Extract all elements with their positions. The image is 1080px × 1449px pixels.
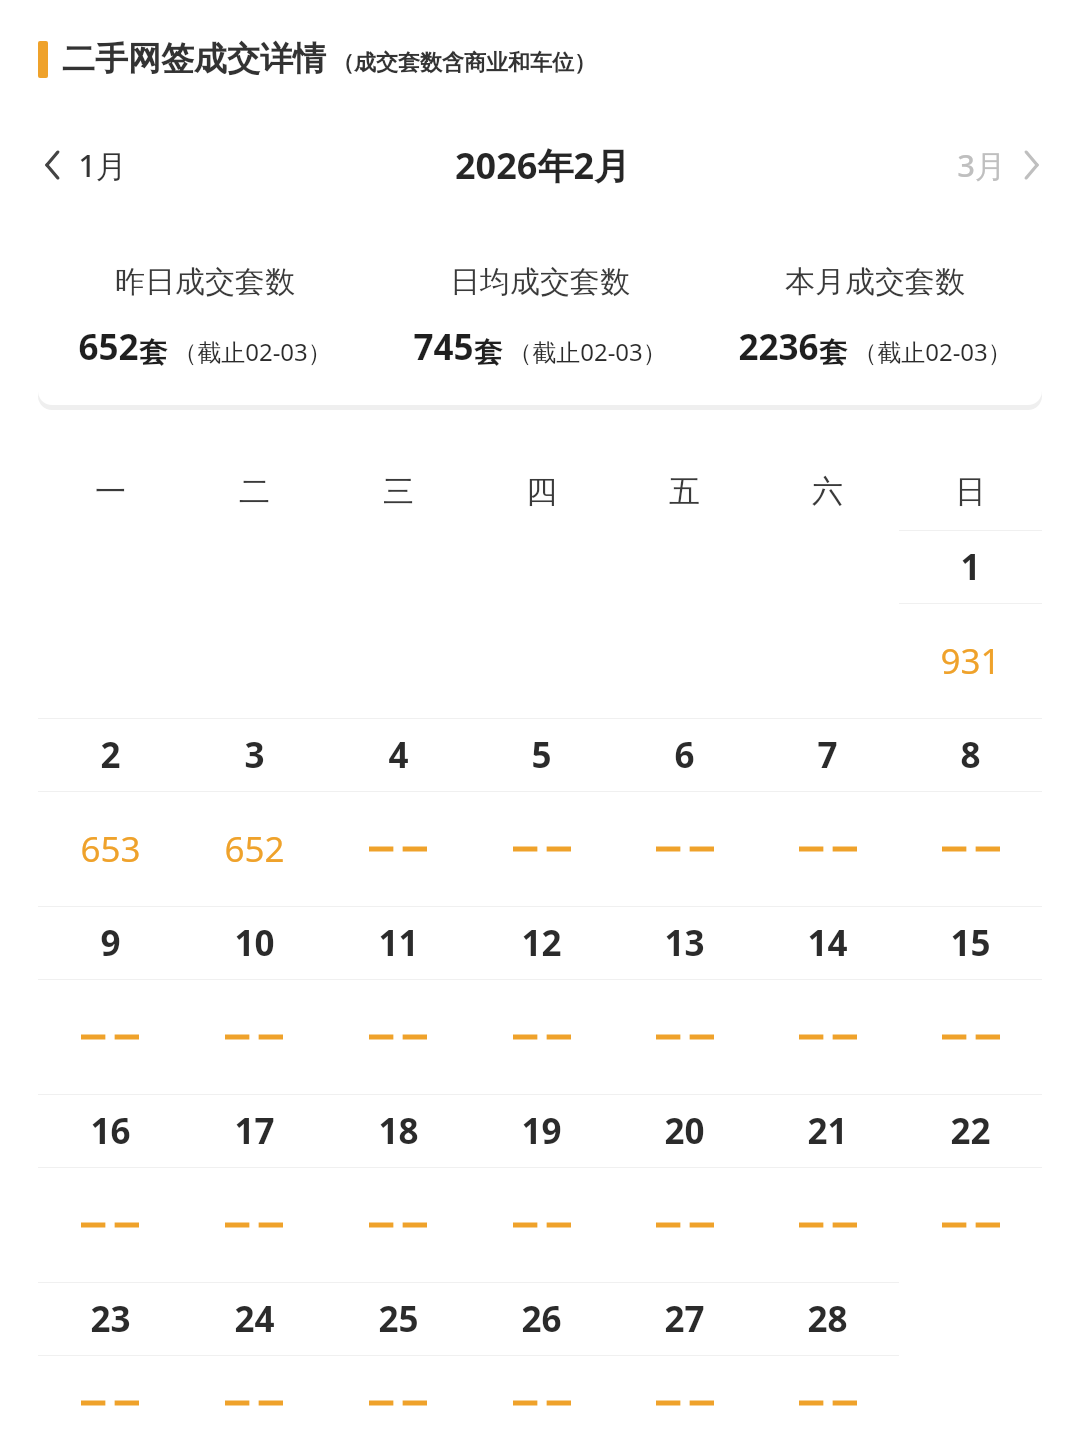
button[interactable]: 12 xyxy=(470,907,613,979)
button[interactable]: 26 xyxy=(470,1283,613,1355)
button[interactable]: 18 xyxy=(326,1095,470,1167)
button[interactable]: 3 xyxy=(182,719,326,791)
staticText: 6 xyxy=(674,731,695,779)
staticText: 10 xyxy=(234,919,275,967)
staticText: 26 xyxy=(521,1295,562,1343)
staticText: （截止02-03） xyxy=(853,335,1012,368)
staticText: 六 xyxy=(812,472,843,511)
staticText: 28 xyxy=(807,1295,848,1343)
button[interactable]: 23 xyxy=(38,1283,182,1355)
button[interactable]: 22 xyxy=(899,1095,1042,1167)
staticText: 3 xyxy=(244,731,265,779)
staticText: 27 xyxy=(664,1295,705,1343)
staticText: 23 xyxy=(90,1295,131,1343)
button[interactable]: 9 xyxy=(38,907,182,979)
staticText: 11 xyxy=(378,919,419,967)
staticText: 五 xyxy=(669,472,700,511)
staticText: 652 xyxy=(224,825,285,873)
button[interactable]: 昨日成交套数 xyxy=(38,229,1042,405)
staticText: 13 xyxy=(664,919,705,967)
button[interactable]: 2 xyxy=(38,719,182,791)
button[interactable]: 1月 xyxy=(34,138,135,192)
button[interactable]: 19 xyxy=(470,1095,613,1167)
button[interactable]: 28 xyxy=(756,1283,899,1355)
button[interactable]: 20 xyxy=(613,1095,756,1167)
button[interactable]: 24 xyxy=(182,1283,326,1355)
button[interactable]: 10 xyxy=(182,907,326,979)
staticText: 3月 xyxy=(957,144,1006,186)
staticText: 一 xyxy=(95,472,126,511)
staticText: 8 xyxy=(960,731,981,779)
staticText: 1 xyxy=(960,543,981,591)
button[interactable]: 16 xyxy=(38,1095,182,1167)
staticText: 22 xyxy=(950,1107,991,1155)
staticText: 652 xyxy=(78,323,139,371)
button[interactable]: 27 xyxy=(613,1283,756,1355)
staticText: 5 xyxy=(531,731,552,779)
staticText: 18 xyxy=(378,1107,419,1155)
staticText: 昨日成交套数 xyxy=(115,263,295,301)
staticText: 四 xyxy=(526,472,557,511)
button[interactable]: 6 xyxy=(613,719,756,791)
staticText: 二手网签成交详情 xyxy=(62,38,326,80)
staticText: 17 xyxy=(234,1107,275,1155)
staticText: 21 xyxy=(807,1107,848,1155)
staticText: 9 xyxy=(100,919,121,967)
staticText: 套 xyxy=(139,335,167,370)
staticText: 653 xyxy=(80,825,141,873)
staticText: 745 xyxy=(413,323,474,371)
staticText: 套 xyxy=(819,335,847,370)
staticText: 25 xyxy=(378,1295,419,1343)
button[interactable]: 4 xyxy=(326,719,470,791)
staticText: （截止02-03） xyxy=(173,335,332,368)
button[interactable]: 17 xyxy=(182,1095,326,1167)
staticText: 4 xyxy=(388,731,409,779)
button[interactable]: 8 xyxy=(899,719,1042,791)
staticText: 本月成交套数 xyxy=(785,263,965,301)
staticText: 24 xyxy=(234,1295,275,1343)
staticText: 931 xyxy=(940,637,1001,685)
staticText: 15 xyxy=(950,919,991,967)
staticText: （截止02-03） xyxy=(508,335,667,368)
staticText: 20 xyxy=(664,1107,705,1155)
staticText: 1月 xyxy=(78,144,127,186)
button[interactable]: 13 xyxy=(613,907,756,979)
button[interactable]: 21 xyxy=(756,1095,899,1167)
staticText: 套 xyxy=(474,335,502,370)
staticText: 2236 xyxy=(738,323,819,371)
staticText: 16 xyxy=(90,1107,131,1155)
staticText: 12 xyxy=(521,919,562,967)
staticText: 14 xyxy=(807,919,848,967)
button[interactable]: 7 xyxy=(756,719,899,791)
button[interactable]: 15 xyxy=(899,907,1042,979)
button[interactable]: 25 xyxy=(326,1283,470,1355)
staticText: 三 xyxy=(383,472,414,511)
button[interactable]: 3月 xyxy=(949,138,1050,192)
staticText: 19 xyxy=(521,1107,562,1155)
staticText: 2 xyxy=(100,731,121,779)
staticText: 2026年2月 xyxy=(455,141,630,190)
staticText: 日均成交套数 xyxy=(450,263,630,301)
button[interactable]: 11 xyxy=(326,907,470,979)
staticText: 二 xyxy=(239,472,270,511)
button[interactable]: 5 xyxy=(470,719,613,791)
button[interactable]: 14 xyxy=(756,907,899,979)
staticText: 7 xyxy=(817,731,838,779)
button[interactable]: 1 xyxy=(899,531,1042,603)
staticText: 日 xyxy=(955,472,986,511)
staticText: （成交套数含商业和车位） xyxy=(332,49,596,77)
